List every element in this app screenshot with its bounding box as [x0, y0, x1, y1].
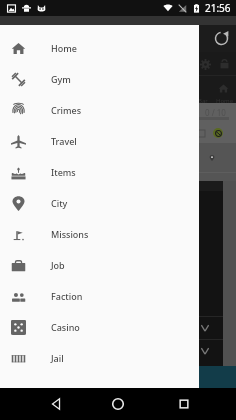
staticText: Home: [51, 42, 77, 54]
staticText: 21:56: [205, 1, 231, 15]
staticText: 0 / 10: [205, 107, 226, 118]
staticText: Items: [51, 166, 76, 178]
staticText: Bar: [198, 97, 208, 105]
staticText: Casino: [51, 321, 80, 333]
button[interactable]: Crimes: [0, 95, 199, 126]
staticText: Missions: [51, 228, 89, 240]
staticText: Jail: [51, 352, 64, 364]
button[interactable]: Home: [110, 396, 126, 412]
button[interactable]: Jail: [0, 343, 199, 374]
button[interactable]: Back: [48, 396, 64, 412]
button[interactable]: Items: [0, 157, 199, 188]
button[interactable]: Home: [0, 33, 199, 64]
staticText: Travel: [51, 135, 77, 147]
staticText: City: [51, 197, 68, 209]
button[interactable]: Casino: [0, 312, 199, 343]
staticText: Gym: [51, 73, 71, 85]
button[interactable]: Job: [0, 250, 199, 281]
staticText: Home: [216, 97, 234, 105]
button[interactable]: Missions: [0, 219, 199, 250]
staticText: Crimes: [51, 104, 82, 116]
staticText: Job: [51, 259, 65, 271]
button[interactable]: Recents: [176, 396, 192, 412]
button[interactable]: Faction: [0, 281, 199, 312]
button[interactable]: City: [0, 188, 199, 219]
button[interactable]: Refresh: [214, 31, 229, 46]
staticText: Faction: [51, 290, 83, 302]
button[interactable]: Gym: [0, 64, 199, 95]
button[interactable]: Travel: [0, 126, 199, 157]
